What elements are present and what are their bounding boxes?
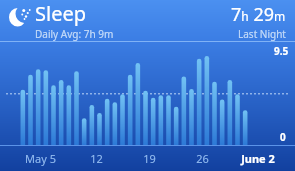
button[interactable]: May 5 [13, 150, 67, 167]
button[interactable]: June 2 [231, 150, 285, 167]
button[interactable]: 19 [122, 150, 176, 167]
staticText: 19 [143, 151, 156, 166]
staticText: 26 [196, 151, 209, 166]
button[interactable]: 26 [175, 150, 229, 167]
staticText: 9.5 [274, 44, 289, 58]
staticText: 0 [280, 130, 286, 144]
staticText: June 2 [241, 151, 275, 166]
staticText: Daily Avg: 7h 9m [35, 27, 114, 41]
button[interactable]: 12 [69, 150, 123, 167]
staticText: May 5 [25, 151, 56, 166]
staticText: 7h 29m [231, 2, 286, 27]
other: Sleep [8, 4, 33, 29]
staticText: 12 [90, 151, 103, 166]
staticText: Sleep [35, 0, 86, 27]
button[interactable]: Sleep [0, 0, 295, 41]
staticText: Last Night [238, 27, 286, 41]
